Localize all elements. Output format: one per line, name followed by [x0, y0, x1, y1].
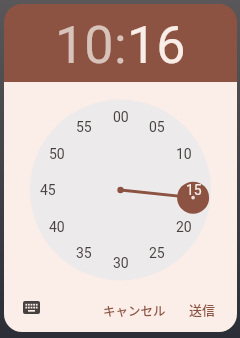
- button[interactable]: 10: [169, 145, 199, 163]
- staticText: キャンセル: [103, 301, 166, 319]
- button[interactable]: 40: [42, 218, 72, 236]
- button[interactable]: 55: [69, 118, 99, 136]
- staticText: 55: [76, 119, 92, 135]
- button[interactable]: 20: [169, 218, 199, 236]
- staticText: 40: [49, 219, 65, 235]
- staticText: 05: [149, 119, 165, 135]
- button[interactable]: 30: [106, 254, 136, 272]
- button[interactable]: 50: [42, 145, 72, 163]
- staticText: 送信: [189, 300, 216, 319]
- staticText: 50: [49, 146, 65, 162]
- staticText: :: [114, 15, 127, 76]
- staticText: 20: [176, 219, 192, 235]
- button[interactable]: 送信: [177, 299, 227, 320]
- staticText: 45: [40, 182, 56, 198]
- button[interactable]: 45: [33, 181, 63, 199]
- button[interactable]: 05: [142, 118, 172, 136]
- staticText: 25: [149, 245, 165, 261]
- staticText: 10: [176, 146, 192, 162]
- button[interactable]: 15: [179, 181, 209, 199]
- staticText: 30: [113, 255, 129, 271]
- staticText: 00: [113, 109, 129, 125]
- button[interactable]: 25: [142, 244, 172, 262]
- button[interactable]: 16: [127, 15, 186, 76]
- button[interactable]: [18, 295, 44, 319]
- staticText: 15: [186, 182, 202, 198]
- button[interactable]: 35: [69, 244, 99, 262]
- button[interactable]: 00: [106, 108, 136, 126]
- staticText: 35: [76, 245, 92, 261]
- button[interactable]: キャンセル: [99, 299, 169, 320]
- button[interactable]: 10: [55, 15, 114, 76]
